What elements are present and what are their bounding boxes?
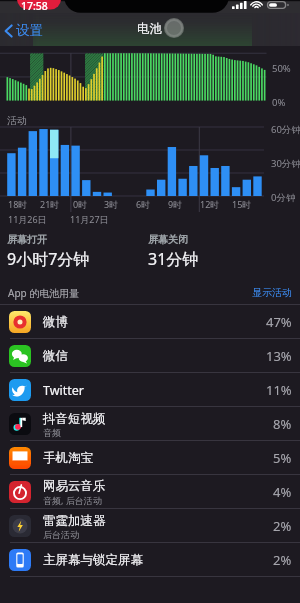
- button[interactable]: 显示活动: [252, 286, 292, 299]
- staticText: 微博: [43, 314, 68, 330]
- button[interactable]: 返回设置: [4, 22, 43, 39]
- button[interactable]: 网易云音乐: [0, 475, 300, 509]
- staticText: 抖音短视频: [43, 411, 106, 427]
- staticText: 9小时7分钟: [7, 248, 90, 270]
- button[interactable]: Twitter: [0, 373, 300, 407]
- staticText: 0%: [272, 96, 286, 109]
- staticText: 后台活动: [43, 529, 79, 540]
- button[interactable]: 手机淘宝: [0, 441, 300, 475]
- staticText: 31分钟: [148, 248, 199, 270]
- staticText: 手机淘宝: [43, 450, 93, 466]
- staticText: 12时: [200, 198, 220, 210]
- staticText: 电池: [137, 21, 162, 37]
- staticText: 18时: [8, 198, 28, 210]
- button[interactable]: 微信: [0, 339, 300, 373]
- staticText: 3时: [104, 198, 119, 210]
- staticText: 6时: [136, 198, 151, 210]
- staticText: Twitter: [43, 382, 84, 399]
- button[interactable]: 雷霆加速器: [0, 509, 300, 543]
- button[interactable]: 抖音短视频: [0, 407, 300, 441]
- staticText: 5%: [273, 449, 292, 467]
- staticText: 设置: [16, 22, 43, 39]
- staticText: 50%: [272, 62, 291, 75]
- staticText: 13%: [266, 347, 292, 365]
- staticText: 显示活动: [252, 286, 292, 299]
- staticText: 音频: [43, 427, 61, 438]
- staticText: 15时: [232, 198, 252, 210]
- staticText: 2%: [273, 517, 292, 535]
- staticText: 4%: [273, 483, 292, 501]
- staticText: 屏幕打开: [7, 233, 47, 246]
- staticText: 21时: [40, 198, 60, 210]
- staticText: 30分钟: [271, 157, 300, 170]
- staticText: 微信: [43, 348, 68, 364]
- staticText: 屏幕关闭: [148, 233, 188, 246]
- staticText: 0分钟: [271, 191, 296, 204]
- button[interactable]: 微博: [0, 305, 300, 339]
- staticText: 活动: [7, 114, 27, 127]
- staticText: 2%: [273, 551, 292, 569]
- staticText: App 的电池用量: [8, 286, 80, 300]
- staticText: 0时: [73, 198, 88, 210]
- staticText: 11%: [266, 381, 292, 399]
- staticText: 11月27日: [70, 213, 109, 225]
- staticText: 网易云音乐: [43, 478, 106, 494]
- staticText: 60分钟: [271, 123, 300, 136]
- staticText: 17:58: [21, 0, 48, 12]
- staticText: 音频, 后台活动: [43, 494, 102, 506]
- staticText: 11月26日: [8, 213, 47, 225]
- staticText: 主屏幕与锁定屏幕: [43, 552, 143, 568]
- staticText: 9时: [168, 198, 183, 210]
- staticText: 47%: [266, 313, 292, 331]
- staticText: 8%: [273, 415, 292, 433]
- staticText: 雷霆加速器: [43, 513, 106, 529]
- button[interactable]: 主屏幕与锁定屏幕: [0, 543, 300, 577]
